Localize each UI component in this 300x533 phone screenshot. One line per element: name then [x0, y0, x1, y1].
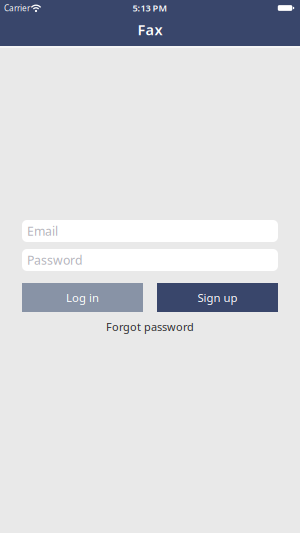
button[interactable]: Log in: [22, 283, 143, 312]
staticText: Email: [27, 223, 58, 239]
staticText: Carrier: [4, 2, 30, 14]
staticText: Forgot password: [106, 319, 194, 334]
button[interactable]: Forgot password: [106, 319, 194, 334]
button[interactable]: Password: [22, 249, 278, 271]
staticText: Sign up: [197, 290, 237, 305]
staticText: 5:13 PM: [132, 2, 167, 14]
staticText: Log in: [66, 290, 99, 305]
staticText: Password: [27, 252, 83, 268]
staticText: Fax: [137, 20, 162, 39]
button[interactable]: Email: [22, 220, 278, 242]
button[interactable]: Sign up: [157, 283, 278, 312]
